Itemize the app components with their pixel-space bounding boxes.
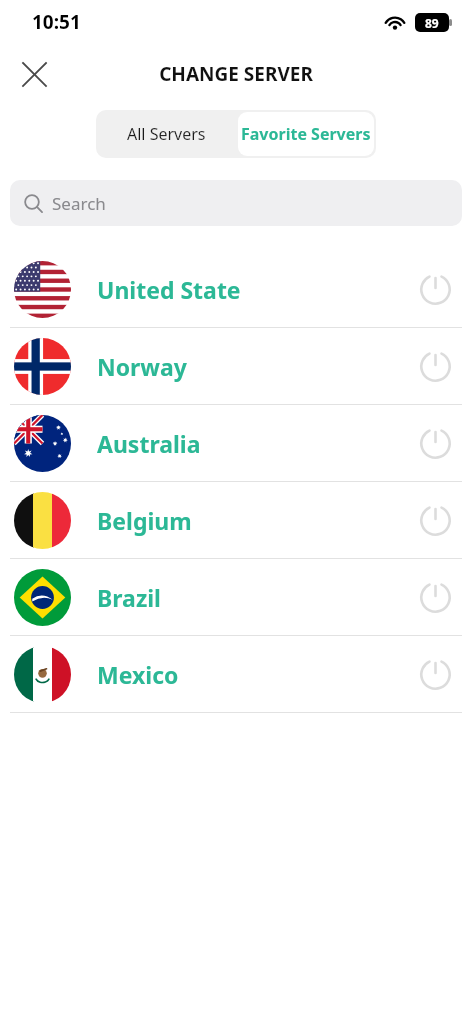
button[interactable]: Belgium	[0, 482, 472, 558]
button[interactable]: Connect to Norway	[410, 341, 460, 391]
button[interactable]: Favorite Servers	[238, 112, 374, 156]
staticText: 10:51	[32, 9, 81, 35]
staticText: Brazil	[97, 582, 410, 613]
button[interactable]: Search	[10, 180, 462, 226]
button[interactable]: All Servers	[96, 110, 236, 158]
button[interactable]: Connect to Belgium	[410, 495, 460, 545]
button[interactable]: United State	[0, 251, 472, 327]
staticText: CHANGE SERVER	[159, 61, 313, 87]
button[interactable]: Connect to Brazil	[410, 572, 460, 622]
staticText: United State	[97, 274, 410, 305]
button[interactable]: Connect to Australia	[410, 418, 460, 468]
button[interactable]: Australia	[0, 405, 472, 481]
button[interactable]: Norway	[0, 328, 472, 404]
button[interactable]: Mexico	[0, 636, 472, 712]
button[interactable]: Connect to Mexico	[410, 649, 460, 699]
button[interactable]: Connect to United State	[410, 264, 460, 314]
staticText: Australia	[97, 428, 410, 459]
button[interactable]: Brazil	[0, 559, 472, 635]
staticText: Favorite Servers	[241, 123, 371, 145]
staticText: 89	[425, 15, 439, 31]
staticText: All Servers	[127, 123, 206, 145]
button[interactable]: Close	[13, 53, 55, 95]
staticText: Belgium	[97, 505, 410, 536]
staticText: Mexico	[97, 659, 410, 690]
staticText: Search	[52, 192, 106, 215]
staticText: Norway	[97, 351, 410, 382]
